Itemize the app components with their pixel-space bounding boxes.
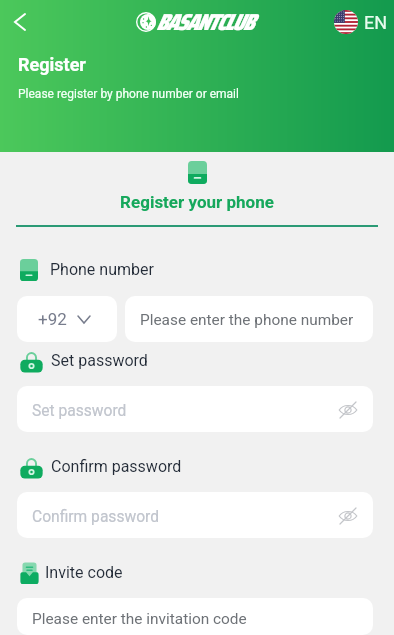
button[interactable]: Show password xyxy=(334,396,362,424)
staticText: Please register by phone number or email xyxy=(18,87,239,101)
button[interactable]: Show password xyxy=(334,502,362,530)
button[interactable]: BASANTCLUB xyxy=(136,4,253,40)
button[interactable]: Please enter the phone number xyxy=(125,296,373,342)
staticText: Please enter the phone number xyxy=(140,311,354,329)
staticText: Register your phone xyxy=(0,192,394,212)
staticText: Confirm password xyxy=(51,457,182,476)
button[interactable]: Confirm password xyxy=(17,492,373,538)
button[interactable]: +92 xyxy=(17,296,117,342)
button[interactable]: Set password xyxy=(17,386,373,432)
staticText: Set password xyxy=(51,351,148,370)
button[interactable]: Please enter the invitation code xyxy=(17,598,373,635)
staticText: Register xyxy=(18,54,86,75)
button[interactable]: Back xyxy=(0,2,40,42)
staticText: Phone number xyxy=(50,260,154,279)
staticText: +92 xyxy=(38,309,67,329)
staticText: Invite code xyxy=(45,563,123,582)
staticText: Please enter the invitation code xyxy=(32,610,247,628)
staticText: Set password xyxy=(32,402,127,420)
staticText: Confirm password xyxy=(32,508,160,526)
button[interactable]: EN xyxy=(334,10,388,34)
staticText: BASANTCLUB xyxy=(156,4,253,40)
staticText: EN xyxy=(364,12,388,33)
